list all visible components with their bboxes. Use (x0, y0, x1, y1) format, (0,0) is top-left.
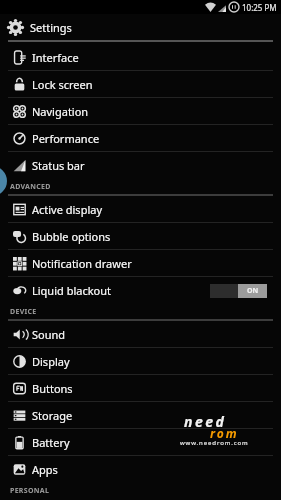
staticText: Bubble options (32, 229, 111, 244)
staticText: Battery (32, 435, 70, 450)
staticText: www.needrom.com (180, 439, 249, 447)
button[interactable]: ON (210, 284, 267, 298)
button[interactable]: Buttons (0, 375, 281, 402)
staticText: Liquid blackout (32, 283, 111, 298)
staticText: 10:25 PM (242, 2, 277, 13)
button[interactable]: Lock screen (0, 71, 281, 98)
staticText: Status bar (32, 158, 85, 173)
button[interactable]: Sound (0, 321, 281, 348)
button[interactable]: Bubble options (0, 223, 281, 250)
staticText: PERSONAL (10, 486, 50, 496)
button[interactable]: Apps (0, 456, 281, 483)
staticText: rom (210, 425, 239, 441)
staticText: Active display (32, 202, 103, 217)
button[interactable]: Display (0, 348, 281, 375)
staticText: Settings (30, 20, 72, 35)
button[interactable]: Status bar (0, 152, 281, 179)
button[interactable]: Notification drawer (0, 250, 281, 277)
button[interactable]: Interface (0, 44, 281, 71)
staticText: Navigation (32, 104, 89, 119)
staticText: Display (32, 354, 70, 369)
staticText: Lock screen (32, 77, 93, 92)
staticText: Interface (32, 50, 79, 65)
staticText: Buttons (32, 381, 73, 396)
staticText: ON (247, 286, 259, 296)
staticText: Performance (32, 131, 100, 146)
staticText: Notification drawer (32, 256, 132, 271)
staticText: DEVICE (10, 307, 37, 317)
button[interactable]: Settings (0, 14, 281, 42)
staticText: Apps (32, 462, 58, 477)
button[interactable]: Navigation (0, 98, 281, 125)
staticText: need (184, 412, 227, 431)
staticText: Storage (32, 408, 73, 423)
button[interactable]: Storage (0, 402, 281, 429)
button[interactable]: Liquid blackout (0, 277, 281, 304)
staticText: Sound (32, 327, 66, 342)
button[interactable]: Battery (0, 429, 281, 456)
staticText: ADVANCED (10, 182, 51, 192)
button[interactable]: Performance (0, 125, 281, 152)
button[interactable]: Active display (0, 196, 281, 223)
